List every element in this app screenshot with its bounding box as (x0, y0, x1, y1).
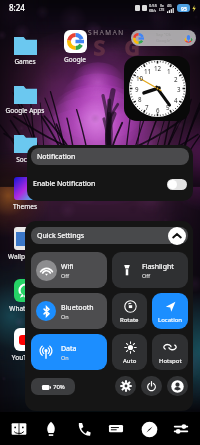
button[interactable]: Messages (103, 416, 129, 442)
button[interactable]: Account (167, 376, 188, 396)
button[interactable]: Rotate (112, 293, 147, 329)
staticText: 4 (174, 96, 178, 104)
staticText: Games (3, 57, 47, 66)
button[interactable]: Games (3, 32, 47, 66)
staticText: Auto (123, 357, 137, 365)
button[interactable]: Wifi (31, 252, 107, 288)
staticText: Flashlight (142, 262, 174, 272)
staticText: 8 (138, 95, 142, 103)
staticText: 1 (167, 67, 171, 75)
staticText: S (93, 32, 106, 62)
button[interactable]: Google Apps (3, 81, 47, 115)
staticText: 8:24 (9, 2, 25, 13)
staticText: Google (53, 55, 97, 64)
staticText: Google Apps (3, 106, 47, 115)
button[interactable]: Settings (168, 416, 194, 442)
staticText: Notification (37, 152, 76, 162)
button[interactable]: Power (141, 376, 162, 396)
staticText: 7 (145, 103, 149, 111)
staticText: 9 (135, 85, 139, 93)
button[interactable]: Collapse (168, 227, 186, 245)
staticText: Vo (160, 4, 164, 8)
button[interactable]: Notification (31, 148, 189, 165)
staticText: Enable Notification (33, 179, 96, 189)
button[interactable]: Clock (124, 56, 190, 121)
button[interactable]: Social (3, 130, 47, 164)
button[interactable]: Auto (112, 334, 147, 370)
button[interactable]: Google (53, 30, 97, 64)
staticText: LTE (159, 8, 165, 12)
staticText: Bluetooth (61, 303, 94, 313)
button[interactable]: Location (152, 293, 188, 329)
staticText: Hotspot (159, 357, 182, 365)
staticText: On (61, 354, 69, 361)
button[interactable]: Files (6, 416, 32, 442)
staticText: Wifi (61, 262, 74, 272)
staticText: WhatsApp (3, 304, 47, 313)
staticText: 4G (167, 3, 172, 8)
staticText: Themes (3, 202, 47, 211)
staticText: On (61, 313, 69, 320)
button[interactable]: Bluetooth (31, 293, 107, 329)
button[interactable]: Quick Settings (31, 227, 188, 244)
staticText: Quick Settings (37, 231, 85, 241)
staticText: Rotate (120, 316, 139, 324)
staticText: S H A M A N (88, 28, 124, 37)
staticText: 2 (174, 75, 178, 83)
staticText: Google" (156, 38, 172, 44)
button[interactable]: Phone (71, 416, 97, 442)
staticText: 10 (136, 74, 144, 82)
button[interactable]: YouTube (3, 328, 47, 362)
button[interactable]: Themes (3, 177, 47, 211)
staticText: 6 (156, 106, 160, 114)
staticText: Wallpapers (3, 252, 47, 261)
staticText: Data (61, 344, 77, 354)
button[interactable]: Wallpapers (3, 227, 47, 261)
staticText: 12 (154, 64, 162, 72)
button[interactable]: Rocket (38, 416, 64, 442)
staticText: KB/s (149, 8, 157, 13)
staticText: Off (61, 272, 70, 279)
staticText: 11 (144, 67, 152, 75)
button[interactable]: Settings (115, 376, 136, 396)
button[interactable]: WhatsApp (3, 279, 47, 313)
button[interactable]: Browser (136, 416, 162, 442)
staticText: 3 (177, 85, 181, 93)
staticText: Social (3, 155, 47, 164)
button[interactable]: 70% (31, 378, 75, 395)
button[interactable]: Data (31, 334, 107, 370)
button[interactable]: Say "Ok (131, 30, 196, 46)
button[interactable]: Hotspot (152, 334, 188, 370)
staticText: 95 (181, 5, 187, 12)
button[interactable]: Flashlight (112, 252, 188, 288)
staticText: 70% (53, 383, 65, 391)
staticText: Off (142, 272, 151, 279)
staticText: Say "Ok (156, 32, 172, 38)
staticText: G (124, 32, 141, 62)
staticText: YouTube (3, 353, 47, 362)
button[interactable]: Enable Notification (27, 169, 193, 199)
staticText: 0.55 (149, 3, 157, 8)
staticText: 5 (166, 103, 170, 111)
staticText: Location (158, 316, 183, 324)
